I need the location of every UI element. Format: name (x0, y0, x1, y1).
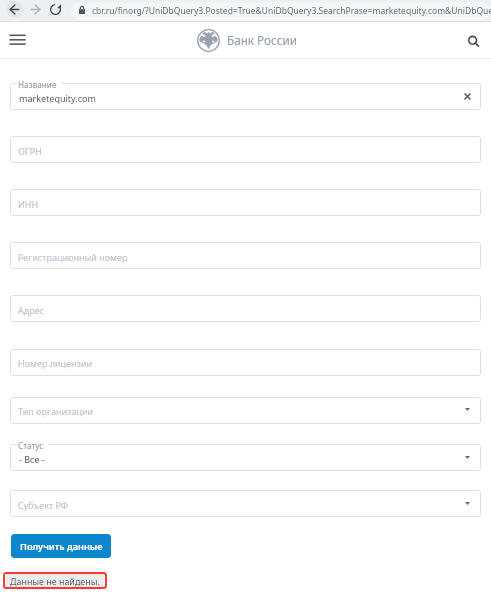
button[interactable] (10, 397, 481, 424)
button[interactable] (10, 295, 481, 322)
button[interactable]: Search (464, 32, 481, 49)
staticText: Банк России (227, 32, 297, 48)
button[interactable] (10, 136, 481, 163)
staticText: Данные не найдены. (10, 575, 100, 587)
staticText: - Все - (19, 453, 45, 465)
staticText: ОГРН (18, 145, 42, 157)
button[interactable] (10, 490, 481, 517)
staticText: Субъект РФ (18, 499, 69, 511)
staticText: Регистрационный номер (18, 251, 128, 263)
button[interactable] (10, 189, 481, 216)
button[interactable]: Forward (27, 1, 44, 18)
staticText: Название (18, 79, 57, 90)
button[interactable] (10, 83, 481, 110)
staticText: ИНН (18, 198, 39, 210)
staticText: Тип организации (18, 405, 94, 417)
button[interactable] (10, 242, 481, 269)
staticText: cbr.ru/finorg/?UniDbQuery3.Posted=True&U… (92, 5, 491, 17)
staticText: marketequity.com (19, 92, 96, 104)
button[interactable] (10, 349, 481, 376)
button[interactable]: Reload (47, 1, 64, 18)
staticText: Получить данные (20, 540, 103, 553)
button[interactable]: Back (6, 1, 23, 18)
button[interactable]: Получить данные (11, 534, 111, 558)
staticText: Номер лицензии (18, 357, 93, 369)
button[interactable]: Menu (6, 29, 29, 52)
staticText: Статус (18, 440, 44, 451)
button[interactable] (10, 444, 481, 471)
staticText: Адрес (18, 304, 45, 316)
